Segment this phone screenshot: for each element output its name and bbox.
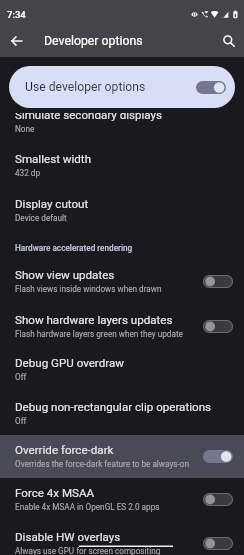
- button[interactable]: [0, 478, 244, 523]
- button[interactable]: [0, 435, 244, 478]
- staticText: Disable HW overlays: [15, 530, 121, 544]
- button[interactable]: [0, 113, 244, 138]
- staticText: Smallest width: [15, 152, 92, 166]
- staticText: Display cutout: [15, 197, 89, 211]
- staticText: Overrides the force-dark feature to be a…: [15, 459, 189, 469]
- staticText: Hardware accelerated rendering: [15, 243, 133, 253]
- staticText: Always use GPU for screen compositing: [15, 546, 161, 555]
- staticText: Debug non-rectangular clip operations: [15, 400, 212, 414]
- staticText: Use developer options: [25, 80, 146, 94]
- staticText: Off: [15, 372, 27, 382]
- staticText: Flash hardware layers green when they up…: [15, 329, 183, 339]
- staticText: Device default: [15, 213, 67, 223]
- button[interactable]: [0, 345, 244, 389]
- staticText: Show view updates: [15, 268, 115, 282]
- staticText: Flash views inside windows when drawn: [15, 284, 162, 294]
- staticText: Force 4x MSAA: [15, 486, 95, 500]
- staticText: Developer options: [44, 34, 143, 48]
- staticText: Enable 4x MSAA in OpenGL ES 2.0 apps: [15, 502, 160, 512]
- staticText: 7:34: [7, 9, 26, 20]
- staticText: Show hardware layers updates: [15, 313, 173, 327]
- button[interactable]: [0, 389, 244, 435]
- staticText: Simulate secondary displays: [15, 113, 163, 122]
- button[interactable]: Search: [216, 28, 241, 53]
- button[interactable]: Use developer options: [9, 66, 235, 108]
- staticText: 432 dp: [15, 168, 41, 178]
- staticText: Override force-dark: [15, 443, 114, 457]
- staticText: Debug GPU overdraw: [15, 356, 124, 370]
- button[interactable]: Back: [4, 28, 29, 53]
- staticText: None: [15, 124, 35, 134]
- staticText: Off: [15, 416, 27, 426]
- button[interactable]: [0, 183, 244, 228]
- button[interactable]: [0, 256, 244, 301]
- button[interactable]: [0, 301, 244, 345]
- button[interactable]: [0, 138, 244, 183]
- button[interactable]: [0, 523, 244, 555]
